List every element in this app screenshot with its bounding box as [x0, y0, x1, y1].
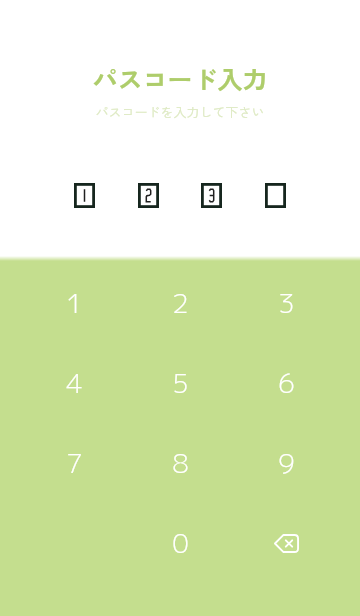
staticText: 1: [66, 284, 83, 322]
button[interactable]: 0: [141, 504, 219, 582]
staticText: 3: [278, 284, 295, 322]
staticText: パスコードを入力して下さい: [95, 102, 265, 121]
button[interactable]: 4: [35, 344, 113, 422]
button[interactable]: Delete: [247, 504, 325, 582]
button[interactable]: 6: [247, 344, 325, 422]
staticText: 9: [278, 444, 295, 482]
button[interactable]: 1: [35, 264, 113, 342]
button[interactable]: 3: [247, 264, 325, 342]
button[interactable]: 2: [141, 264, 219, 342]
staticText: 4: [66, 364, 83, 402]
button[interactable]: 5: [141, 344, 219, 422]
staticText: 8: [172, 444, 189, 482]
staticText: 5: [172, 364, 189, 402]
staticText: 7: [66, 444, 83, 482]
staticText: パスコード入力: [92, 60, 268, 96]
staticText: 0: [172, 524, 189, 562]
button[interactable]: 9: [247, 424, 325, 502]
staticText: 6: [278, 364, 295, 402]
staticText: 2: [172, 284, 189, 322]
button[interactable]: 7: [35, 424, 113, 502]
button[interactable]: 8: [141, 424, 219, 502]
